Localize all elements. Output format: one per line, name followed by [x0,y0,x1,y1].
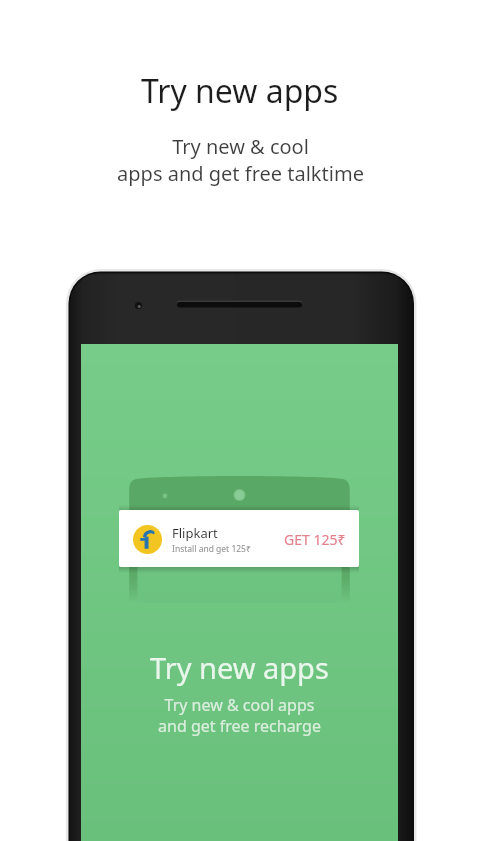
staticText: Try new & cool apps and get free talktim… [117,133,364,187]
staticText: GET 125₹ [284,530,346,549]
staticText: Try new & cool apps and get free recharg… [158,694,321,737]
staticText: Flipkart [172,524,218,542]
button[interactable]: Flipkart app icon [119,510,359,567]
staticText: Try new apps [150,648,329,687]
staticText: Try new apps [141,69,339,113]
other: Flipkart app icon [133,525,162,554]
staticText: Install and get 125₹ [172,543,251,555]
